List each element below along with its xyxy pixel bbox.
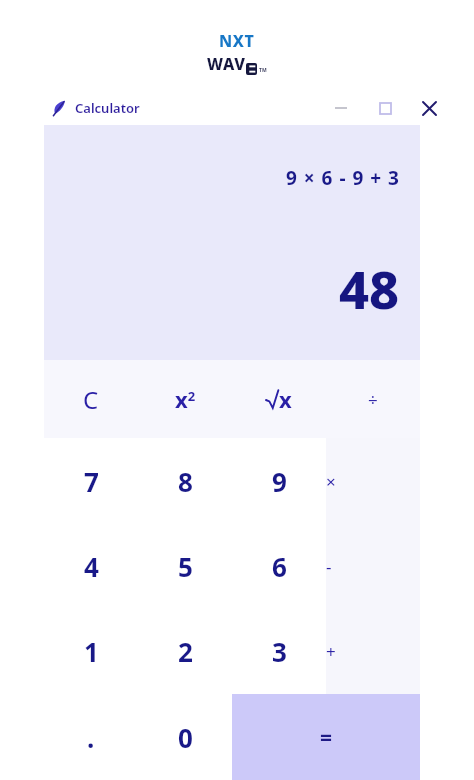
staticText: Calculator: [75, 99, 140, 117]
staticText: 8: [178, 464, 193, 499]
staticText: 4: [84, 549, 99, 584]
staticText: NXT: [219, 30, 255, 52]
staticText: 9 × 6 - 9 + 3: [286, 165, 400, 191]
staticText: 3: [272, 634, 287, 669]
staticText: =: [320, 723, 333, 752]
staticText: x: [279, 384, 292, 414]
button[interactable]: ÷: [326, 360, 420, 438]
staticText: C: [83, 383, 99, 416]
button[interactable]: +: [326, 609, 336, 694]
button[interactable]: 6: [232, 524, 326, 609]
staticText: 7: [84, 464, 99, 499]
staticText: TM: [259, 67, 267, 74]
staticText: 5: [178, 549, 193, 584]
button[interactable]: ×: [326, 438, 336, 524]
button[interactable]: 3: [232, 609, 326, 694]
staticText: WAV: [207, 53, 246, 75]
button[interactable]: 1: [44, 609, 138, 694]
button[interactable]: Maximize: [366, 93, 404, 123]
staticText: -: [326, 555, 332, 578]
button[interactable]: 8: [138, 438, 232, 524]
button[interactable]: Close: [410, 93, 448, 123]
staticText: ÷: [368, 388, 378, 411]
staticText: 0: [178, 720, 193, 755]
button[interactable]: x squared: [138, 360, 232, 438]
button[interactable]: -: [326, 524, 332, 609]
staticText: 48: [339, 253, 400, 324]
staticText: 1: [84, 634, 99, 669]
button[interactable]: 9: [232, 438, 326, 524]
button[interactable]: 0: [138, 694, 232, 780]
staticText: +: [326, 640, 336, 663]
button[interactable]: 4: [44, 524, 138, 609]
button[interactable]: C: [44, 360, 138, 438]
button[interactable]: square root of x: [232, 360, 326, 438]
staticText: .: [87, 720, 95, 755]
button[interactable]: =: [232, 694, 420, 780]
button[interactable]: 5: [138, 524, 232, 609]
staticText: 2: [178, 634, 193, 669]
button[interactable]: Minimize: [322, 93, 360, 123]
staticText: ×: [326, 470, 336, 493]
staticText: 9: [272, 464, 287, 499]
button[interactable]: .: [44, 694, 138, 780]
staticText: x2: [175, 384, 196, 414]
staticText: 6: [272, 549, 287, 584]
button[interactable]: 7: [44, 438, 138, 524]
button[interactable]: 2: [138, 609, 232, 694]
